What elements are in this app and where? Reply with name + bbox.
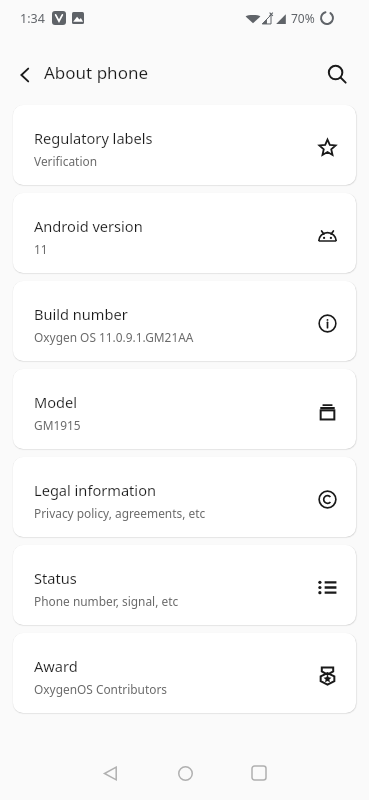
button[interactable]: Android version — [13, 193, 356, 273]
staticText: About phone — [44, 61, 149, 84]
staticText: Award — [34, 656, 78, 676]
button[interactable]: Model — [13, 369, 356, 449]
staticText: Status — [34, 568, 77, 588]
staticText: Regulatory labels — [34, 128, 153, 148]
staticText: Build number — [34, 304, 128, 324]
staticText: Legal information — [34, 480, 156, 500]
button[interactable]: Home — [165, 753, 205, 793]
staticText: 1:34 — [20, 10, 45, 27]
button[interactable]: Award — [13, 633, 356, 713]
staticText: Verification — [34, 153, 98, 169]
staticText: OxygenOS Contributors — [34, 681, 167, 697]
button[interactable]: Regulatory labels — [13, 105, 356, 185]
button[interactable]: Recents — [239, 753, 279, 793]
staticText: GM1915 — [34, 417, 81, 433]
button[interactable]: Build number — [13, 281, 356, 361]
button[interactable]: Legal information — [13, 457, 356, 537]
staticText: 70% — [291, 10, 315, 26]
button[interactable]: Search — [319, 54, 355, 90]
staticText: Phone number, signal, etc — [34, 593, 179, 609]
staticText: Model — [34, 392, 78, 412]
staticText: 11 — [34, 241, 48, 257]
button[interactable]: Status — [13, 545, 356, 625]
button[interactable]: Back — [7, 54, 43, 90]
button[interactable]: Back — [90, 753, 130, 793]
staticText: Oxygen OS 11.0.9.1.GM21AA — [34, 329, 194, 345]
staticText: Privacy policy, agreements, etc — [34, 505, 206, 521]
staticText: Android version — [34, 216, 143, 236]
